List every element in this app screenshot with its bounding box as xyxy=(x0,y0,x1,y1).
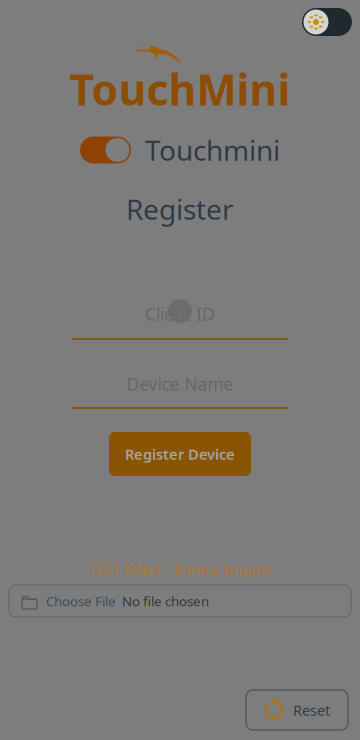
staticText: Register xyxy=(126,190,234,228)
button[interactable]: Touchmini enabled xyxy=(80,136,131,163)
staticText: Client ID xyxy=(145,302,215,325)
staticText: Touchmini xyxy=(145,131,280,169)
staticText: Device Name xyxy=(126,372,233,395)
button[interactable]: Toggle appearance xyxy=(302,8,352,36)
button[interactable]: Reset xyxy=(246,690,348,730)
staticText: TouchMini xyxy=(69,61,290,117)
staticText: TEST ONLY - Device Import xyxy=(88,559,271,579)
staticText: Choose File xyxy=(46,592,116,610)
staticText: Reset xyxy=(293,700,330,720)
button[interactable]: Choose File xyxy=(9,585,351,617)
button[interactable]: Register Device xyxy=(109,432,251,476)
staticText: No file chosen xyxy=(122,592,209,610)
staticText: Register Device xyxy=(125,444,235,464)
